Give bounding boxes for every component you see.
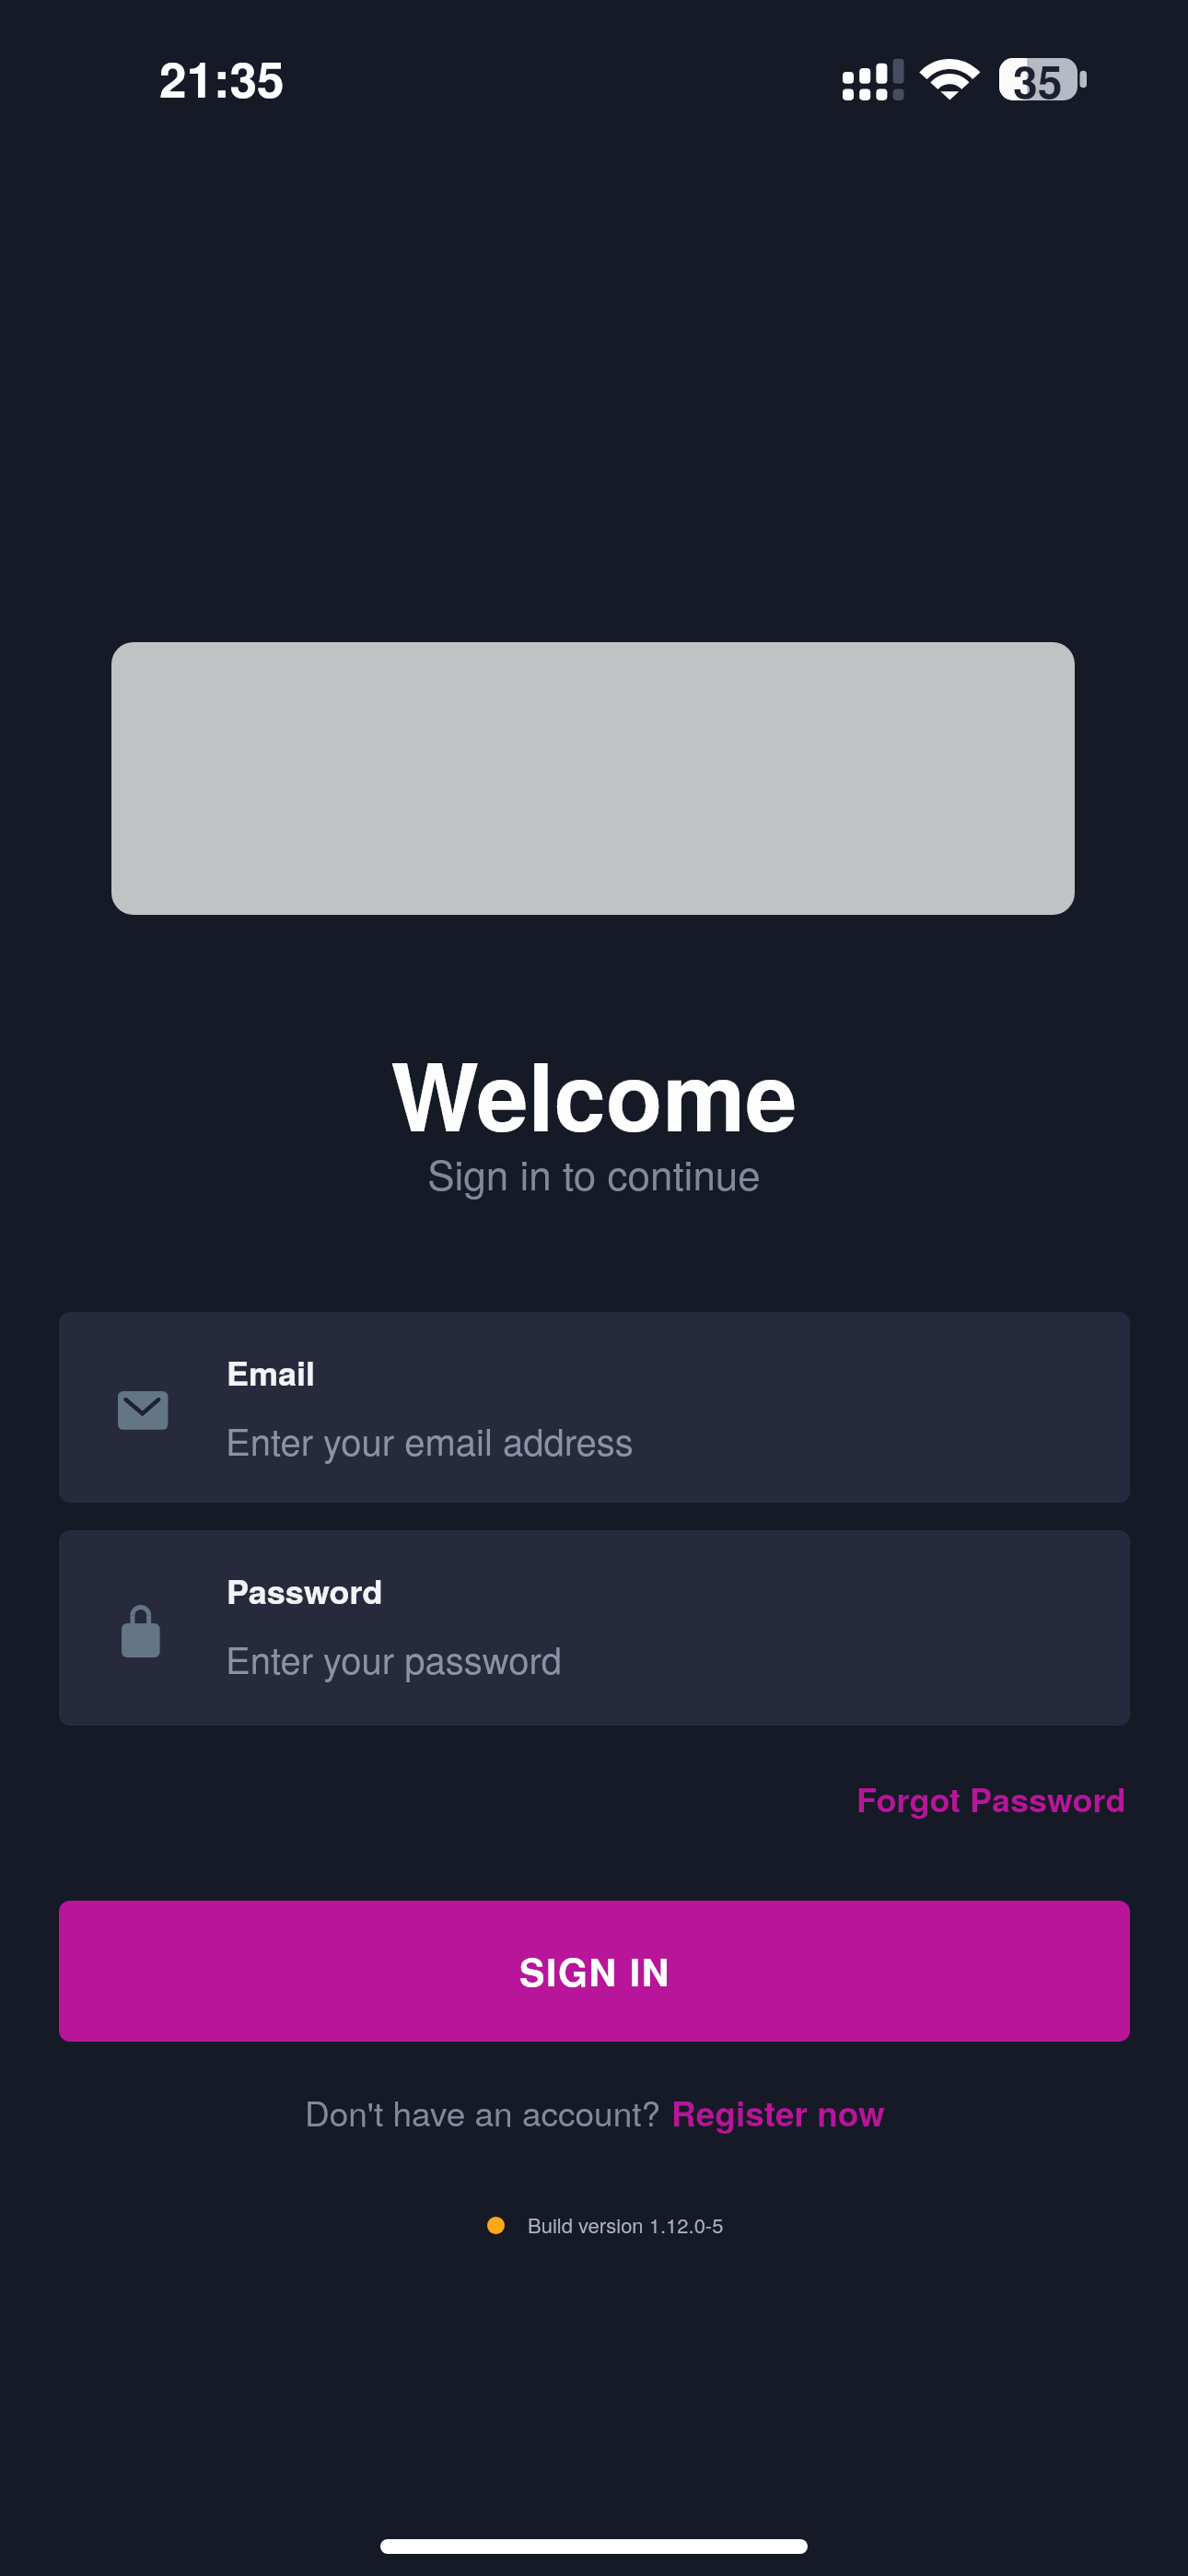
button[interactable]: Email	[59, 1312, 1130, 1503]
staticText: SIGN IN	[519, 1944, 670, 1998]
button[interactable]: SIGN IN	[59, 1901, 1130, 2042]
other: App logo	[111, 642, 1075, 915]
staticText: Don't have an account?	[305, 2088, 661, 2137]
staticText: Build version 1.12.0-5	[528, 2210, 724, 2240]
staticText: Password	[227, 1566, 383, 1614]
other: Cellular signal	[843, 58, 904, 100]
other: Battery 35 percent	[999, 58, 1089, 132]
button[interactable]: Register now	[671, 2088, 885, 2137]
staticText: Enter your password	[226, 1632, 562, 1684]
staticText: Sign in to continue	[0, 1143, 1188, 1201]
staticText: Forgot Password	[856, 1774, 1126, 1822]
button[interactable]: Password	[59, 1530, 1130, 1726]
staticText: Enter your email address	[226, 1413, 634, 1466]
other: Password	[122, 1605, 160, 1657]
button[interactable]: Forgot Password	[834, 1760, 1148, 1837]
staticText: Email	[227, 1348, 316, 1396]
staticText: Welcome	[0, 1026, 1188, 1160]
staticText: 35	[1013, 49, 1063, 112]
other: Email	[118, 1391, 169, 1430]
staticText: Register now	[671, 2088, 885, 2137]
staticText: 21:35	[159, 42, 285, 112]
other: Wi-Fi	[921, 59, 979, 100]
